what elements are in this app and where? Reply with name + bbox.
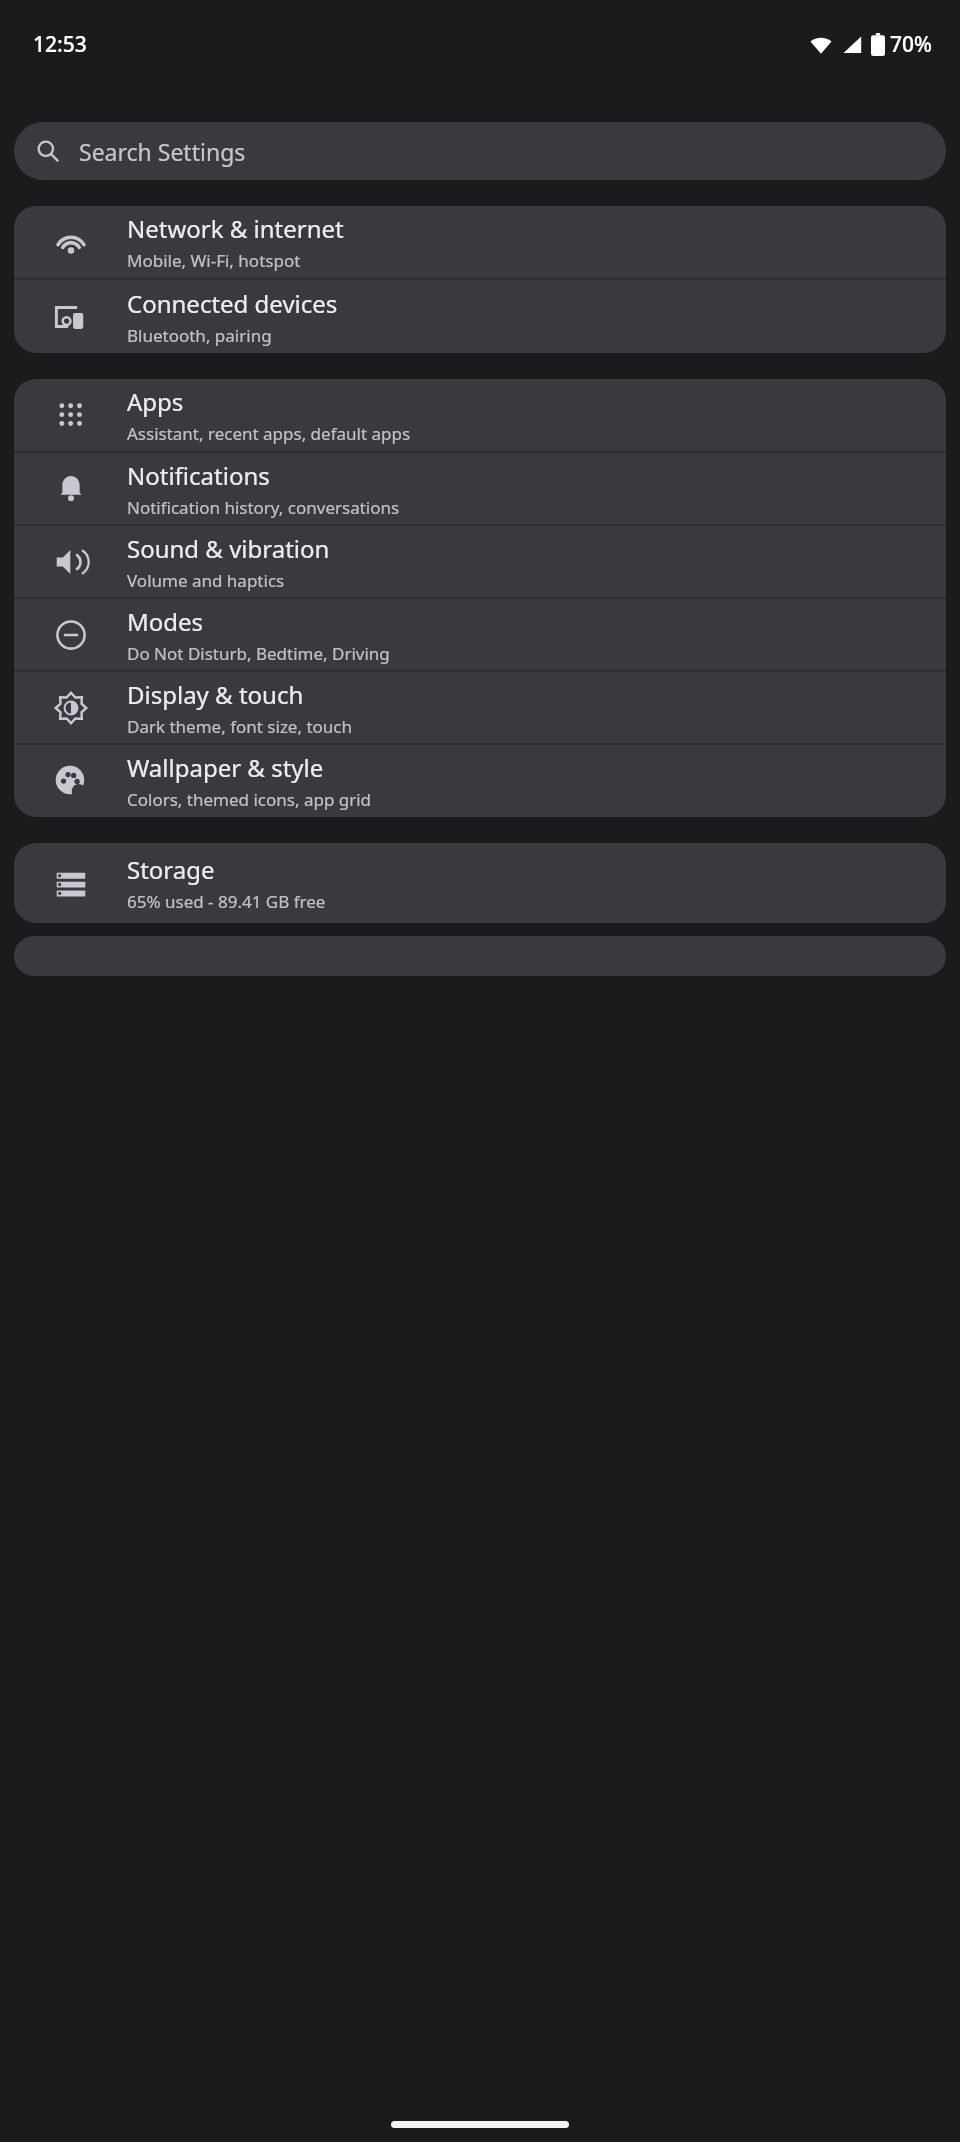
staticText: Notifications [127, 459, 270, 492]
staticText: Dark theme, font size, touch [127, 715, 353, 738]
button[interactable]: Sound & vibration [14, 526, 946, 597]
button[interactable]: Wallpaper & style [14, 745, 946, 817]
staticText: Network & internet [127, 212, 344, 245]
staticText: Do Not Disturb, Bedtime, Driving [127, 642, 390, 665]
staticText: Sound & vibration [127, 532, 330, 565]
button[interactable]: Notifications [14, 453, 946, 524]
button[interactable]: Display & touch [14, 672, 946, 743]
staticText: 65% used - 89.41 GB free [127, 890, 326, 913]
button[interactable]: Search [14, 122, 946, 180]
staticText: Apps [127, 385, 184, 418]
staticText: Bluetooth, pairing [127, 324, 272, 347]
staticText: Volume and haptics [127, 569, 285, 592]
button[interactable]: Modes [14, 599, 946, 670]
button[interactable]: Apps [14, 379, 946, 451]
staticText: Colors, themed icons, app grid [127, 788, 372, 811]
button[interactable]: Storage [14, 843, 946, 923]
staticText: Storage [127, 853, 215, 886]
staticText: Search Settings [79, 136, 246, 167]
staticText: Assistant, recent apps, default apps [127, 422, 411, 445]
staticText: Display & touch [127, 678, 304, 711]
staticText: 70% [890, 30, 932, 59]
button[interactable]: Connected devices [14, 280, 946, 353]
staticText: Connected devices [127, 287, 338, 320]
other: Search [36, 139, 60, 163]
staticText: Notification history, conversations [127, 496, 400, 519]
staticText: Modes [127, 605, 204, 638]
button[interactable]: Network & internet [14, 206, 946, 278]
staticText: 12:53 [33, 30, 87, 59]
staticText: Wallpaper & style [127, 751, 324, 784]
staticText: Mobile, Wi-Fi, hotspot [127, 249, 301, 272]
